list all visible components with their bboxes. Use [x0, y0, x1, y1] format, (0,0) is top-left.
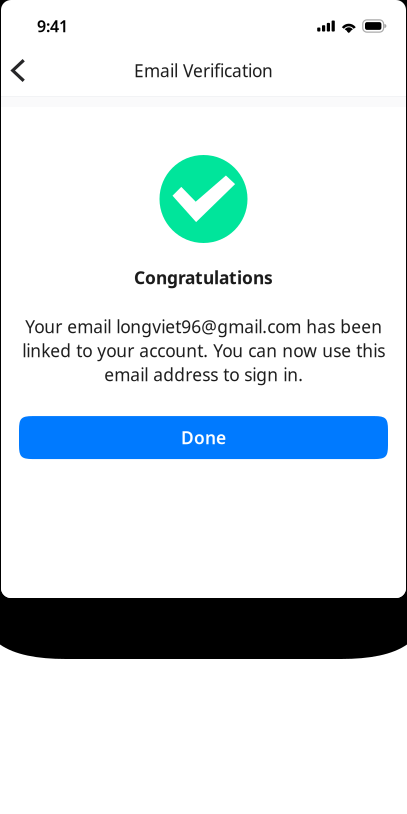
- staticText: Congratulations: [134, 266, 273, 289]
- staticText: Email Verification: [134, 59, 273, 82]
- button[interactable]: Back: [1, 45, 34, 96]
- staticText: Your email longviet96@gmail.com has been…: [22, 315, 385, 386]
- button[interactable]: Done: [19, 416, 388, 459]
- staticText: Done: [181, 426, 226, 449]
- staticText: 9:41: [37, 15, 68, 37]
